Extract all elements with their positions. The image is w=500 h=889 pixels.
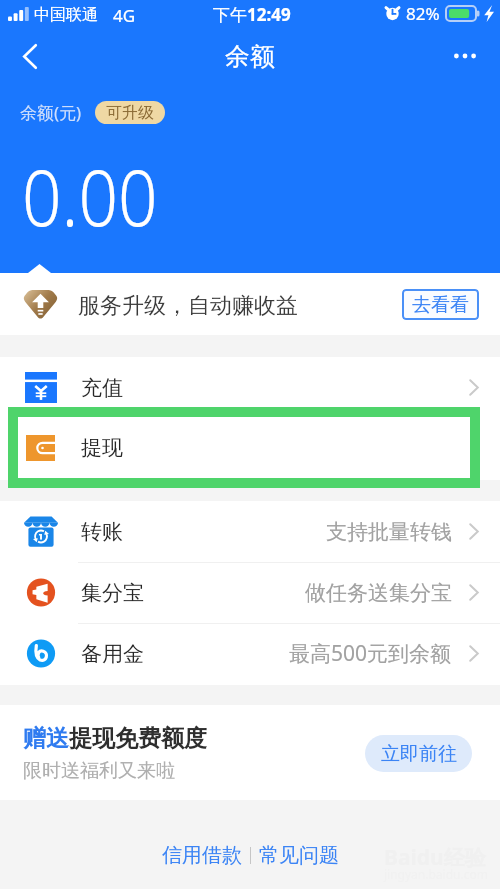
staticText: 常见问题 (259, 843, 339, 868)
staticText: 82% (406, 2, 440, 25)
button[interactable]: 可升级 (95, 101, 165, 124)
button[interactable]: 转账 (0, 501, 500, 562)
staticText: 4G (113, 4, 136, 27)
staticText: 下午12:49 (213, 3, 291, 26)
button[interactable]: 服务升级，自动赚收益 (0, 273, 500, 335)
staticText: 0.00 (22, 143, 158, 249)
staticText: 做任务送集分宝 (305, 580, 452, 606)
button[interactable]: 集分宝 (0, 562, 500, 623)
button[interactable]: Back (0, 28, 56, 84)
staticText: 立即前往 (381, 742, 457, 766)
button[interactable]: 去看看 (402, 289, 479, 320)
button[interactable]: 常见问题 (251, 840, 347, 870)
button[interactable]: 信用借款 (154, 840, 250, 870)
staticText: 中国联通 (34, 5, 98, 25)
staticText: 提现 (81, 435, 123, 461)
staticText: 赠送提现免费额度 (23, 724, 207, 753)
staticText: 可升级 (106, 103, 154, 123)
staticText: 备用金 (81, 641, 144, 667)
button[interactable]: 提现 (18, 417, 470, 478)
staticText: 充值 (81, 375, 123, 401)
staticText: 提现 (81, 435, 123, 461)
staticText: 余额(元) (20, 101, 82, 124)
staticText: 支持批量转钱 (326, 519, 452, 545)
staticText: 转账 (81, 519, 123, 545)
button[interactable]: 备用金 (0, 623, 500, 684)
button[interactable]: 提现 (0, 417, 500, 478)
staticText: 去看看 (412, 293, 469, 317)
button[interactable]: 充值 (0, 357, 500, 418)
staticText: 余额 (225, 41, 275, 72)
button[interactable]: More options (444, 28, 500, 84)
staticText: 最高500元到余额 (289, 639, 452, 668)
button[interactable]: 立即前往 (365, 735, 472, 772)
staticText: 限时送福利又来啦 (23, 759, 175, 783)
staticText: 信用借款 (162, 843, 242, 868)
staticText: 服务升级，自动赚收益 (78, 292, 298, 320)
staticText: 集分宝 (81, 580, 144, 606)
